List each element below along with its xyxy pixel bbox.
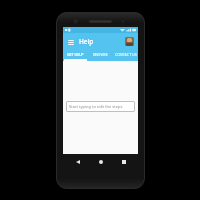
button[interactable]: Start typing to edit the steps xyxy=(66,101,135,112)
staticText: Help xyxy=(79,37,94,46)
staticText: GET HELP xyxy=(67,52,84,57)
button[interactable]: Home xyxy=(95,156,106,167)
staticText: Start typing to edit the steps xyxy=(69,104,123,109)
button[interactable]: Recent apps xyxy=(118,156,129,167)
staticText: BROWSE xyxy=(93,52,108,57)
button[interactable]: Back xyxy=(72,156,83,167)
button[interactable]: CONTACT US xyxy=(113,50,138,59)
button[interactable]: BROWSE xyxy=(88,50,113,59)
staticText: CONTACT US xyxy=(115,52,137,57)
button[interactable]: Account xyxy=(125,37,134,46)
button[interactable]: Navigation menu xyxy=(66,37,76,47)
button[interactable]: GET HELP xyxy=(63,50,88,59)
